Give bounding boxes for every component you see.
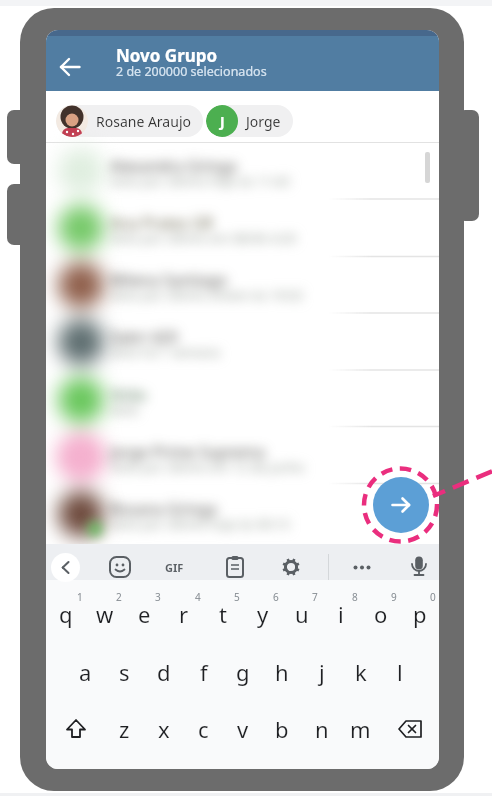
staticText: visto por último em 08/06 4:20 xyxy=(110,229,297,247)
staticText: u xyxy=(295,599,309,629)
staticText: l xyxy=(397,657,403,687)
staticText: m xyxy=(350,714,371,744)
staticText: Sabri 420 xyxy=(110,326,178,347)
button[interactable]: c xyxy=(184,701,223,757)
staticText: Jorge Prime Suprema xyxy=(110,441,265,462)
staticText: j xyxy=(319,657,325,687)
button[interactable]: q xyxy=(46,586,85,642)
staticText: i xyxy=(338,599,344,629)
staticText: p xyxy=(413,599,427,629)
button[interactable]: f xyxy=(184,644,223,700)
button[interactable]: b xyxy=(262,701,301,757)
staticText: s xyxy=(119,657,130,687)
staticText: visto por último em 12 de junho xyxy=(110,458,305,476)
staticText: d xyxy=(157,657,171,687)
staticText: 8 xyxy=(352,590,358,604)
staticText: Rosane Araujo xyxy=(96,112,191,131)
staticText: 9 xyxy=(391,590,397,604)
button[interactable]: p xyxy=(400,586,439,642)
staticText: 5 xyxy=(234,590,240,604)
staticText: Rosana Gringa xyxy=(110,498,217,519)
staticText: visto xyxy=(110,401,139,419)
staticText: q xyxy=(59,599,73,629)
button[interactable] xyxy=(221,553,249,581)
staticText: 1 xyxy=(77,590,83,604)
staticText: t xyxy=(219,599,227,629)
button[interactable]: w xyxy=(85,586,124,642)
button[interactable]: h xyxy=(262,644,301,700)
button[interactable]: Rosane Araujo xyxy=(56,105,203,137)
staticText: Milena Santiago xyxy=(110,269,228,290)
button[interactable]: t xyxy=(203,586,242,642)
staticText: 7 xyxy=(312,590,318,604)
staticText: Ana Prates GR xyxy=(110,212,214,233)
button[interactable] xyxy=(405,553,433,581)
button[interactable] xyxy=(51,701,100,757)
staticText: f xyxy=(200,657,208,687)
staticText: w xyxy=(96,599,114,629)
staticText: r xyxy=(179,599,189,629)
staticText: visto por último hoje às 11:43 xyxy=(110,172,290,190)
button[interactable] xyxy=(106,553,134,581)
button[interactable] xyxy=(54,51,86,83)
staticText: n xyxy=(315,714,329,744)
button[interactable]: n xyxy=(302,701,341,757)
staticText: o xyxy=(374,599,388,629)
staticText: J xyxy=(220,112,225,131)
button[interactable]: e xyxy=(125,586,164,642)
staticText: z xyxy=(119,714,130,744)
staticText: 3 xyxy=(155,590,161,604)
staticText: visto há 1 semana xyxy=(110,343,220,361)
staticText: 4 xyxy=(195,590,201,604)
staticText: x xyxy=(158,714,170,744)
staticText: visto por último hoje às 09:15 xyxy=(110,515,290,533)
staticText: c xyxy=(198,714,209,744)
button[interactable]: GIF xyxy=(156,553,192,581)
button[interactable]: m xyxy=(341,701,380,757)
staticText: h xyxy=(275,657,289,687)
button[interactable]: k xyxy=(341,644,380,700)
staticText: Alexandra Gringa xyxy=(110,155,237,176)
staticText: 0 xyxy=(430,590,436,604)
staticText: v xyxy=(237,714,249,744)
button[interactable]: d xyxy=(144,644,183,700)
staticText: GIF xyxy=(165,560,184,575)
button[interactable]: a xyxy=(66,644,105,700)
button[interactable]: y xyxy=(243,586,282,642)
staticText: 6 xyxy=(273,590,279,604)
staticText: e xyxy=(138,599,151,629)
button[interactable] xyxy=(385,701,434,757)
button[interactable]: g xyxy=(223,644,262,700)
staticText: 2 de 200000 selecionados xyxy=(116,63,267,80)
button[interactable]: J xyxy=(206,105,293,137)
button[interactable]: v xyxy=(223,701,262,757)
button[interactable]: z xyxy=(105,701,144,757)
staticText: visto por último ontem às 19:02 xyxy=(110,286,304,304)
button[interactable]: i xyxy=(321,586,360,642)
button[interactable]: x xyxy=(144,701,183,757)
staticText: b xyxy=(275,714,289,744)
staticText: Novo Grupo xyxy=(116,44,218,67)
button[interactable]: u xyxy=(282,586,321,642)
button[interactable] xyxy=(277,553,305,581)
staticText: Vitão xyxy=(110,384,147,405)
button[interactable] xyxy=(51,553,80,582)
button[interactable]: l xyxy=(380,644,419,700)
staticText: 2 xyxy=(116,590,122,604)
staticText: g xyxy=(236,657,250,687)
staticText: Jorge xyxy=(246,112,281,131)
staticText: y xyxy=(257,599,269,629)
button[interactable]: j xyxy=(302,644,341,700)
staticText: k xyxy=(355,657,367,687)
button[interactable]: o xyxy=(361,586,400,642)
button[interactable]: r xyxy=(164,586,203,642)
button[interactable]: s xyxy=(105,644,144,700)
staticText: a xyxy=(79,657,92,687)
button[interactable] xyxy=(373,477,429,533)
button[interactable] xyxy=(348,553,376,581)
